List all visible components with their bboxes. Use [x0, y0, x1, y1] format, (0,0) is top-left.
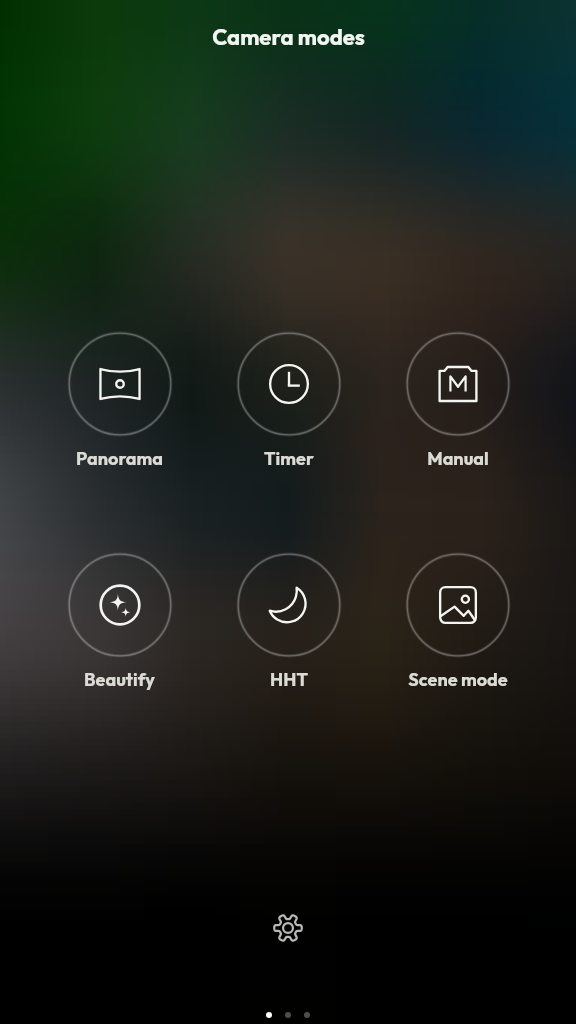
staticText: Timer: [264, 447, 314, 470]
button[interactable]: HHT: [204, 553, 373, 691]
button[interactable]: Manual: [373, 332, 542, 470]
button[interactable]: Scene mode: [373, 553, 542, 691]
button[interactable]: [266, 1012, 272, 1018]
staticText: Manual: [427, 447, 489, 470]
button[interactable]: Panorama: [35, 332, 204, 470]
button[interactable]: Beautify: [35, 553, 204, 691]
button[interactable]: [304, 1012, 310, 1018]
staticText: Beautify: [84, 668, 155, 691]
staticText: Panorama: [76, 447, 163, 470]
button[interactable]: Timer: [204, 332, 373, 470]
staticText: Scene mode: [408, 668, 508, 691]
button[interactable]: Settings: [264, 904, 312, 952]
staticText: Camera modes: [212, 23, 365, 51]
button[interactable]: [285, 1012, 291, 1018]
staticText: HHT: [270, 668, 308, 691]
